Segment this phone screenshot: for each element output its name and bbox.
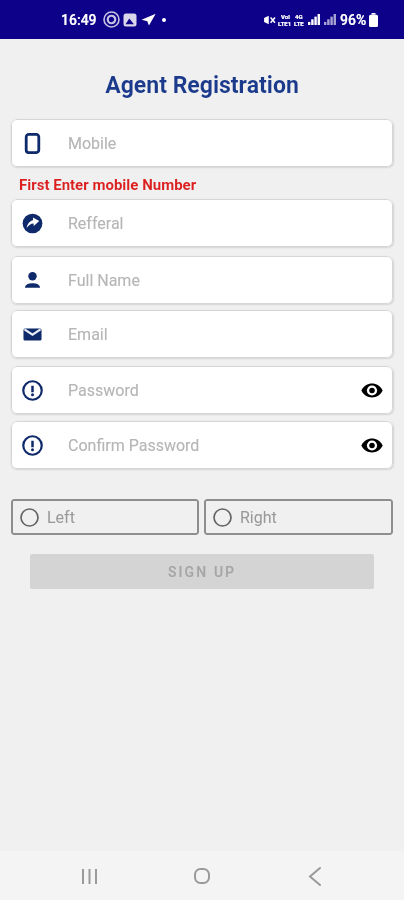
staticText: 4G: [295, 13, 303, 20]
button[interactable]: Confirm Password: [11, 421, 393, 469]
staticText: Left: [47, 508, 75, 527]
button[interactable]: Show password: [359, 432, 385, 458]
staticText: Confirm Password: [68, 436, 359, 455]
button[interactable]: Mobile: [11, 119, 393, 167]
staticText: Right: [240, 508, 277, 527]
staticText: Refferal: [68, 214, 385, 233]
button[interactable]: Refferal: [11, 199, 393, 247]
staticText: SIGN UP: [168, 564, 237, 580]
button[interactable]: Right: [204, 499, 393, 535]
button[interactable]: Home: [178, 852, 226, 900]
staticText: Agent Registration: [0, 72, 404, 99]
staticText: Mobile: [68, 134, 385, 153]
button[interactable]: Back: [291, 852, 339, 900]
staticText: Full Name: [68, 271, 385, 290]
staticText: Password: [68, 381, 359, 400]
staticText: LTE: [294, 20, 304, 27]
button[interactable]: Left: [11, 499, 199, 535]
button[interactable]: SIGN UP: [30, 554, 374, 589]
button[interactable]: Password: [11, 366, 393, 414]
button[interactable]: Email: [11, 310, 393, 358]
staticText: Vol: [281, 13, 290, 20]
staticText: Email: [68, 325, 385, 344]
staticText: 96%: [340, 12, 367, 28]
staticText: LTE1: [278, 20, 292, 27]
button[interactable]: Recent apps: [65, 852, 113, 900]
staticText: 16:49: [61, 12, 97, 28]
staticText: First Enter mobile Number: [19, 176, 197, 194]
button[interactable]: Show password: [359, 377, 385, 403]
button[interactable]: Full Name: [11, 256, 393, 304]
